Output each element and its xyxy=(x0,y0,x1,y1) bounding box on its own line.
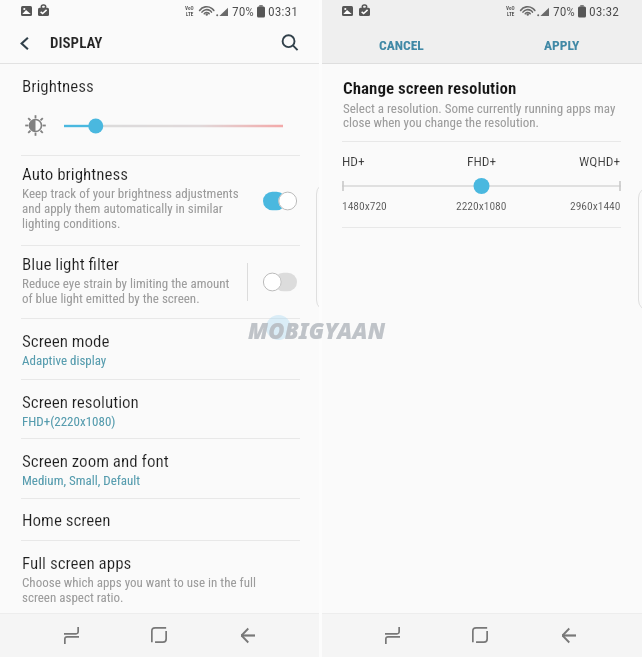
staticText: LTE xyxy=(507,11,515,17)
button[interactable]: Screen zoom and font xyxy=(0,439,321,498)
button[interactable]: Recents xyxy=(348,613,436,657)
staticText: 1480x720 xyxy=(342,199,387,212)
staticText: Auto brightness xyxy=(22,164,129,184)
staticText: Choose which apps you want to use in the… xyxy=(22,575,256,605)
button[interactable]: Full screen apps xyxy=(0,541,321,613)
staticText: Screen mode xyxy=(22,331,110,351)
staticText: Screen zoom and font xyxy=(22,451,169,471)
staticText: LTE xyxy=(186,11,194,17)
button[interactable]: APPLY xyxy=(481,24,642,65)
button[interactable]: Auto brightness xyxy=(0,156,321,245)
staticText: VoO xyxy=(506,5,515,11)
staticText: Medium, Small, Default xyxy=(22,473,141,488)
button[interactable]: Search xyxy=(275,28,305,58)
button[interactable]: Home xyxy=(436,613,524,657)
button[interactable]: Back xyxy=(524,613,613,657)
staticText: APPLY xyxy=(544,37,580,53)
button[interactable]: Recents xyxy=(27,613,115,657)
staticText: Reduce eye strain by limiting the amount… xyxy=(22,276,230,306)
staticText: CANCEL xyxy=(379,37,424,53)
staticText: Change screen resolution xyxy=(343,78,517,98)
button[interactable]: Back xyxy=(203,613,292,657)
staticText: Full screen apps xyxy=(22,553,132,573)
staticText: 70% xyxy=(553,3,575,19)
staticText: FHD+ xyxy=(467,153,497,169)
staticText: 2960x1440 xyxy=(570,199,621,212)
button[interactable]: Blue light filter xyxy=(0,246,321,318)
staticText: Home screen xyxy=(22,510,111,530)
button[interactable]: Off xyxy=(263,272,297,292)
button[interactable]: Screen resolution xyxy=(0,380,321,438)
staticText: Screen resolution xyxy=(22,392,139,412)
staticText: Adaptive display xyxy=(22,353,107,368)
button[interactable]: Brightness level xyxy=(64,116,283,136)
staticText: 70% xyxy=(232,3,254,19)
button[interactable]: On xyxy=(263,191,297,211)
staticText: WQHD+ xyxy=(579,153,621,169)
button[interactable]: Home screen xyxy=(0,499,321,540)
staticText: Brightness xyxy=(22,76,94,96)
button[interactable]: Screen mode xyxy=(0,319,321,379)
button[interactable]: Navigate up xyxy=(8,27,40,59)
staticText: Keep track of your brightness adjustment… xyxy=(22,186,239,231)
staticText: Select a resolution. Some currently runn… xyxy=(343,101,616,130)
staticText: FHD+(2220x1080) xyxy=(22,414,116,429)
button[interactable]: CANCEL xyxy=(321,24,481,65)
staticText: 2220x1080 xyxy=(456,199,507,212)
staticText: VoO xyxy=(185,5,194,11)
staticText: DISPLAY xyxy=(50,34,103,52)
staticText: HD+ xyxy=(342,153,365,169)
staticText: MOBIGYAAN xyxy=(248,315,386,345)
button[interactable]: Home xyxy=(115,613,203,657)
staticText: Blue light filter xyxy=(22,254,120,274)
staticText: 03:32 xyxy=(589,3,619,19)
staticText: 03:31 xyxy=(268,3,298,19)
